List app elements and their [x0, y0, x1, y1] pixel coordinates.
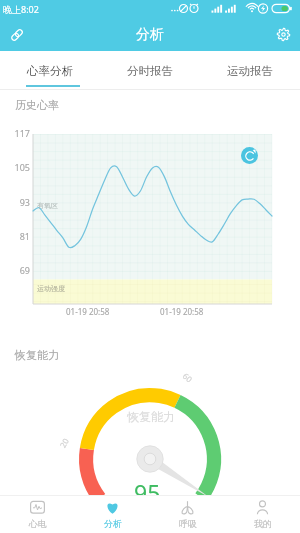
staticText: 81: [3, 230, 30, 242]
staticText: 分时报告: [127, 64, 173, 78]
staticText: 95: [134, 477, 161, 508]
button[interactable]: 分析: [75, 496, 150, 533]
staticText: 117: [3, 127, 30, 139]
staticText: 01-19 20:58: [160, 306, 204, 317]
button[interactable]: 我的: [225, 496, 300, 533]
button[interactable]: 心电: [0, 496, 75, 533]
staticText: 运动报告: [227, 64, 273, 78]
staticText: 20: [57, 435, 71, 449]
button[interactable]: Settings: [266, 18, 300, 51]
button[interactable]: 呼吸: [150, 496, 225, 533]
staticText: 心电: [29, 518, 47, 529]
button[interactable]: 心率分析: [0, 51, 100, 90]
staticText: 呼吸: [179, 518, 197, 529]
staticText: 105: [3, 161, 30, 173]
staticText: 我的: [254, 518, 272, 529]
staticText: 60: [181, 370, 195, 385]
staticText: 93: [3, 196, 30, 208]
button[interactable]: Refresh: [241, 147, 258, 164]
staticText: 分析: [104, 518, 122, 529]
staticText: 恢复能力: [127, 409, 175, 424]
staticText: 运动强度: [37, 284, 65, 293]
staticText: 69: [3, 264, 30, 276]
button[interactable]: Link device: [0, 18, 34, 51]
staticText: 有氧区: [37, 201, 58, 210]
staticText: 恢复能力: [15, 348, 59, 362]
staticText: 心率分析: [27, 64, 73, 78]
button[interactable]: 分时报告: [100, 51, 200, 90]
button[interactable]: 运动报告: [200, 51, 300, 90]
staticText: 晚上8:02: [3, 3, 39, 15]
staticText: 分析: [136, 26, 164, 44]
staticText: 历史心率: [15, 98, 59, 112]
staticText: 01-19 20:58: [66, 306, 110, 317]
